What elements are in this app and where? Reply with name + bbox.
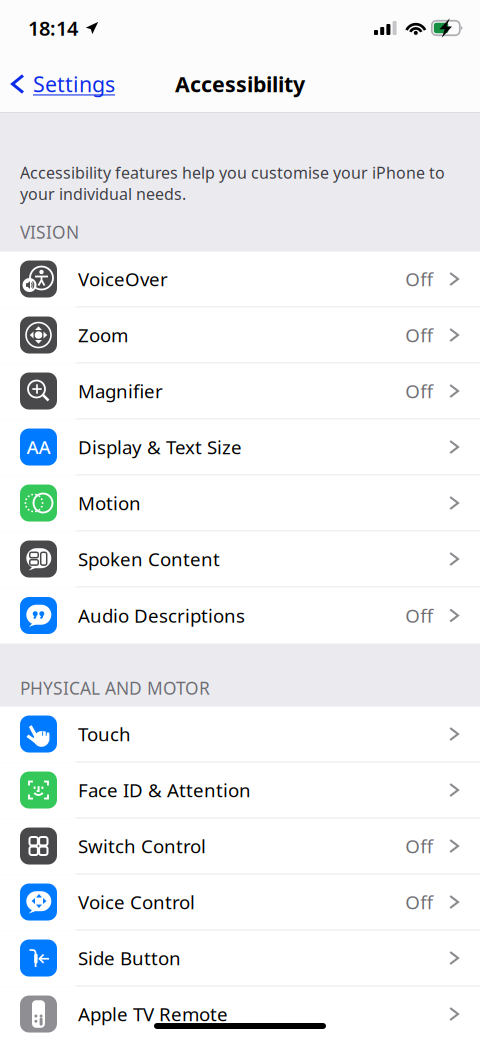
staticText: Off — [405, 834, 433, 858]
button[interactable]: Face ID & Attention — [0, 762, 480, 818]
staticText: Side Button — [78, 946, 181, 970]
staticText: AA — [26, 435, 50, 459]
staticText: Face ID & Attention — [78, 778, 251, 802]
button[interactable]: Touch — [0, 706, 480, 762]
staticText: 18:14 — [28, 15, 78, 41]
staticText: Voice Control — [78, 890, 195, 914]
staticText: Switch Control — [78, 834, 206, 858]
button[interactable]: Settings — [0, 62, 123, 106]
staticText: Display & Text Size — [78, 435, 242, 459]
button[interactable]: Apple TV Remote — [0, 986, 480, 1039]
staticText: PHYSICAL AND MOTOR — [20, 676, 210, 699]
button[interactable]: Magnifier — [0, 363, 480, 419]
staticText: Off — [405, 323, 433, 347]
staticText: Off — [405, 379, 433, 403]
button[interactable]: VoiceOver — [0, 251, 480, 307]
button[interactable]: Motion — [0, 475, 480, 531]
button[interactable]: AA — [0, 419, 480, 475]
button[interactable]: Zoom — [0, 307, 480, 363]
staticText: Accessibility features help you customis… — [20, 162, 445, 204]
staticText: Spoken Content — [78, 547, 220, 571]
staticText: Settings — [33, 70, 115, 98]
staticText: Accessibility — [175, 70, 305, 98]
button[interactable]: Side Button — [0, 930, 480, 986]
staticText: Touch — [78, 722, 131, 746]
staticText: VoiceOver — [78, 267, 168, 291]
staticText: Off — [405, 267, 433, 291]
button[interactable]: Voice Control — [0, 874, 480, 930]
staticText: Off — [405, 603, 433, 628]
staticText: Motion — [78, 491, 141, 515]
button[interactable]: Switch Control — [0, 818, 480, 874]
button[interactable]: Audio Descriptions — [0, 587, 480, 643]
staticText: VISION — [20, 220, 79, 243]
button[interactable]: Spoken Content — [0, 531, 480, 587]
staticText: Zoom — [78, 323, 128, 347]
staticText: Apple TV Remote — [78, 1002, 228, 1026]
staticText: Off — [405, 890, 433, 914]
staticText: Magnifier — [78, 379, 163, 403]
staticText: Audio Descriptions — [78, 603, 245, 628]
